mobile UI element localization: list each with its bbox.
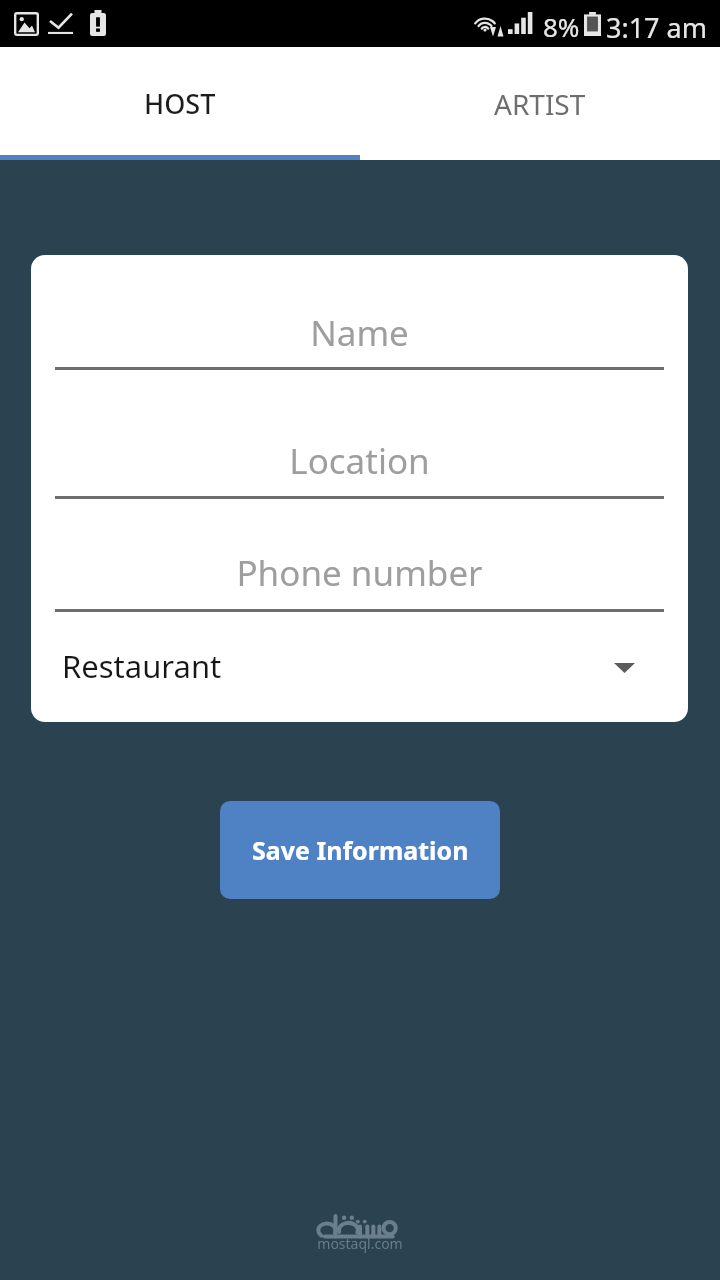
button[interactable]: Save Information	[220, 801, 500, 899]
staticText: mostaql.com	[317, 1234, 403, 1253]
button[interactable]: Name	[55, 301, 664, 370]
staticText: 3:17 am	[606, 9, 707, 46]
staticText: HOST	[144, 85, 216, 122]
button[interactable]: HOST	[0, 47, 360, 160]
button[interactable]: ARTIST	[360, 47, 720, 160]
button[interactable]: Location	[55, 430, 664, 499]
staticText: Location	[31, 437, 688, 485]
staticText: ARTIST	[494, 85, 586, 123]
staticText: Restaurant	[62, 645, 222, 687]
button[interactable]: Select category	[31, 627, 688, 705]
staticText: Save Information	[252, 833, 469, 867]
staticText: 8%	[543, 9, 580, 44]
button[interactable]: Phone number	[55, 542, 664, 612]
staticText: Phone number	[31, 549, 688, 597]
staticText: Name	[31, 309, 688, 357]
